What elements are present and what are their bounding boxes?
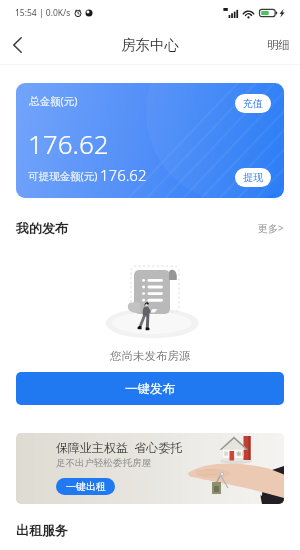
staticText: 您尚未发布房源 [110,349,191,363]
button[interactable]: Back [0,28,34,62]
staticText: 出租服务 [16,522,68,538]
staticText: 一键出租 [66,480,106,493]
staticText: 更多> [258,221,284,235]
button[interactable]: 更多> [258,221,284,235]
staticText: 明细 [267,38,290,52]
staticText: 房东中心 [121,36,179,54]
button[interactable]: 一键出租 [56,478,115,495]
staticText: 可提现金额(元) [28,169,98,183]
button[interactable]: 保障业主权益 省心委托 [16,433,284,504]
staticText: 176.62 [28,126,109,161]
staticText: 充值 [243,97,263,110]
button[interactable]: 明细 [257,30,300,60]
staticText: 15:54 | 0.0K/s [15,7,71,19]
staticText: 足不出户轻松委托房屋 [56,457,151,469]
staticText: 我的发布 [16,220,68,236]
staticText: 一键发布 [125,381,175,397]
button[interactable]: 一键发布 [16,372,284,405]
staticText: 提现 [243,171,263,184]
staticText: 保障业主权益 省心委托 [56,439,183,455]
staticText: 176.62 [100,165,147,185]
button[interactable]: 提现 [235,168,271,187]
button[interactable]: 充值 [235,94,271,113]
staticText: 总金额(元) [29,94,78,108]
